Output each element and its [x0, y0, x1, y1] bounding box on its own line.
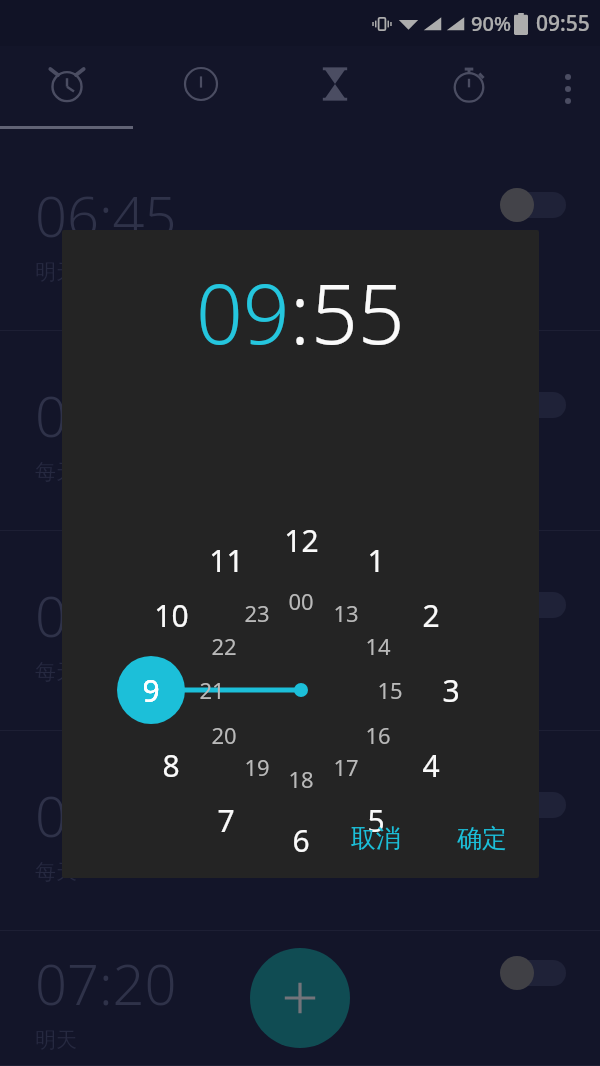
- staticText: 8: [162, 745, 180, 786]
- staticText: 每天: [35, 459, 77, 485]
- button[interactable]: 16: [354, 717, 402, 753]
- button[interactable]: Toggle alarm: [500, 188, 566, 222]
- button[interactable]: 06:45: [0, 131, 600, 331]
- staticText: 16: [365, 720, 391, 750]
- button[interactable]: Add alarm: [250, 948, 350, 1048]
- button[interactable]: 9: [125, 668, 177, 712]
- staticText: 每天: [35, 859, 77, 885]
- button[interactable]: 07:00: [0, 331, 600, 531]
- button[interactable]: 00: [277, 583, 325, 619]
- button[interactable]: 10: [145, 593, 197, 637]
- staticText: 09:55: [536, 9, 590, 38]
- button[interactable]: 17: [322, 749, 370, 785]
- button[interactable]: 4: [405, 743, 457, 787]
- button[interactable]: 22: [200, 628, 248, 664]
- button[interactable]: 14: [354, 628, 402, 664]
- button[interactable]: More options: [536, 46, 600, 131]
- staticText: 确定: [457, 823, 507, 854]
- staticText: 12: [284, 520, 319, 561]
- button[interactable]: 3: [425, 668, 477, 712]
- staticText: 10: [154, 595, 189, 636]
- button[interactable]: 5: [350, 798, 402, 842]
- button[interactable]: 19: [233, 749, 281, 785]
- button[interactable]: 15: [366, 672, 414, 708]
- staticText: 07:00: [35, 377, 177, 453]
- button[interactable]: 55: [311, 256, 405, 368]
- staticText: 07:10: [35, 577, 177, 653]
- staticText: 90%: [471, 10, 511, 37]
- staticText: 每天: [35, 659, 77, 685]
- staticText: 6: [292, 820, 310, 861]
- button[interactable]: Stopwatch: [402, 46, 536, 131]
- staticText: 1: [367, 540, 385, 581]
- staticText: 15: [377, 675, 403, 705]
- staticText: 11: [209, 540, 244, 581]
- button[interactable]: 确定: [451, 815, 513, 862]
- button[interactable]: Alarm: [0, 46, 134, 131]
- staticText: 20: [211, 720, 237, 750]
- staticText: 23: [244, 598, 270, 628]
- button[interactable]: 09: [196, 256, 290, 368]
- button[interactable]: 取消: [345, 815, 407, 862]
- staticText: 4: [422, 745, 440, 786]
- staticText: 3: [442, 670, 460, 711]
- button[interactable]: 12: [275, 518, 327, 562]
- button[interactable]: Clock: [134, 46, 268, 131]
- button[interactable]: Timer: [268, 46, 402, 131]
- staticText: 2: [422, 595, 440, 636]
- button[interactable]: 13: [322, 595, 370, 631]
- staticText: :: [290, 256, 311, 368]
- button[interactable]: 11: [200, 538, 252, 582]
- staticText: 明天: [35, 259, 77, 285]
- button[interactable]: Toggle alarm: [500, 788, 566, 822]
- button[interactable]: 6: [275, 818, 327, 862]
- button[interactable]: 07:15: [0, 731, 600, 931]
- button[interactable]: 18: [277, 761, 325, 797]
- staticText: 19: [244, 752, 270, 782]
- staticText: 09: [196, 256, 290, 368]
- staticText: 18: [288, 764, 314, 794]
- staticText: 55: [311, 256, 405, 368]
- button[interactable]: 2: [405, 593, 457, 637]
- staticText: 5: [367, 800, 385, 841]
- button[interactable]: 23: [233, 595, 281, 631]
- staticText: 06:45: [35, 177, 177, 253]
- staticText: 00: [288, 586, 314, 616]
- button[interactable]: Toggle alarm: [500, 956, 566, 990]
- staticText: 07:20: [35, 945, 177, 1021]
- button[interactable]: 07:10: [0, 531, 600, 731]
- button[interactable]: 8: [145, 743, 197, 787]
- staticText: 21: [199, 675, 225, 705]
- staticText: 13: [333, 598, 359, 628]
- button[interactable]: 20: [200, 717, 248, 753]
- button[interactable]: 21: [188, 672, 236, 708]
- staticText: 9: [142, 670, 160, 711]
- staticText: 14: [365, 631, 391, 661]
- staticText: 07:15: [35, 777, 177, 853]
- staticText: 9: [142, 670, 160, 711]
- staticText: 7: [217, 800, 235, 841]
- staticText: 取消: [351, 823, 401, 854]
- button[interactable]: Toggle alarm: [500, 388, 566, 422]
- button[interactable]: 1: [350, 538, 402, 582]
- button[interactable]: 7: [200, 798, 252, 842]
- staticText: 17: [333, 752, 359, 782]
- button[interactable]: Toggle alarm: [500, 588, 566, 622]
- staticText: 22: [211, 631, 237, 661]
- button[interactable]: 07:20: [0, 931, 600, 1066]
- staticText: 明天: [35, 1027, 77, 1053]
